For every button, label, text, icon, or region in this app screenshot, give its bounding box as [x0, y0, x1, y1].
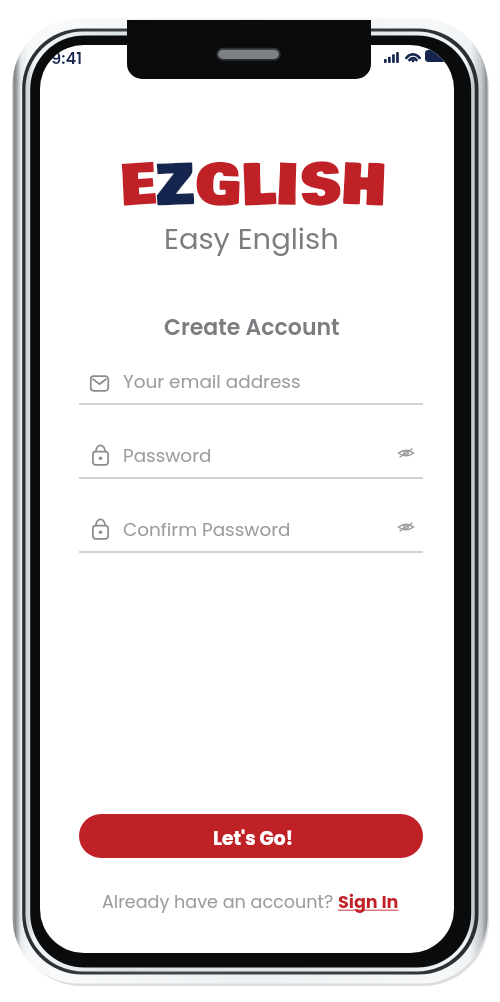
button[interactable]: Already have an account? Sign In	[43, 889, 454, 915]
button[interactable]: Confirm Password	[79, 513, 423, 553]
staticText: Z	[155, 141, 196, 231]
staticText: S	[299, 141, 342, 230]
staticText: H	[339, 141, 389, 231]
staticText: Create Account	[164, 312, 340, 343]
button[interactable]: Show password	[396, 517, 416, 537]
staticText: L	[239, 141, 278, 231]
staticText: Confirm Password	[123, 517, 291, 543]
staticText: Already have an account? Sign In	[102, 890, 399, 915]
staticText: Your email address	[123, 369, 301, 395]
staticText: G	[194, 141, 242, 230]
staticText: Password	[123, 443, 212, 469]
button[interactable]: Your email address	[79, 365, 423, 405]
staticText: I	[275, 142, 301, 230]
button[interactable]: Password	[79, 439, 423, 479]
button[interactable]: Show password	[396, 443, 416, 463]
staticText: Easy English	[164, 219, 339, 260]
staticText: E	[118, 141, 158, 231]
button[interactable]: Let's Go!	[79, 814, 423, 858]
staticText: Let's Go!	[213, 825, 294, 851]
staticText: 9:41	[51, 47, 83, 70]
